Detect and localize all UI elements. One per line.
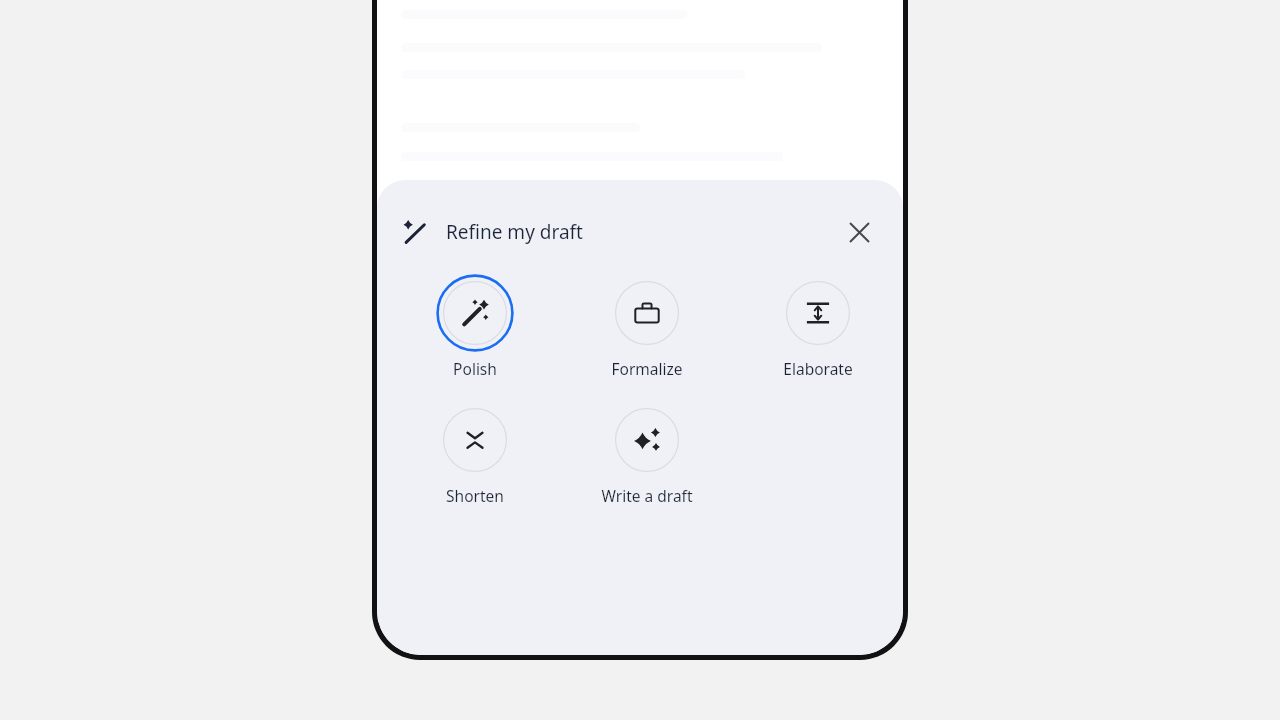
button[interactable]: Polish [389, 274, 561, 379]
staticText: Formalize [611, 358, 683, 379]
staticText: Elaborate [783, 358, 853, 379]
button[interactable]: Close [837, 210, 881, 254]
button[interactable]: Elaborate [733, 274, 903, 379]
staticText: Shorten [446, 485, 504, 506]
button[interactable]: Write a draft [561, 401, 733, 506]
staticText: Write a draft [601, 485, 693, 506]
staticText: Polish [453, 358, 497, 379]
staticText: Refine my draft [446, 219, 583, 245]
button[interactable]: Formalize [561, 274, 733, 379]
button[interactable]: Shorten [389, 401, 561, 506]
